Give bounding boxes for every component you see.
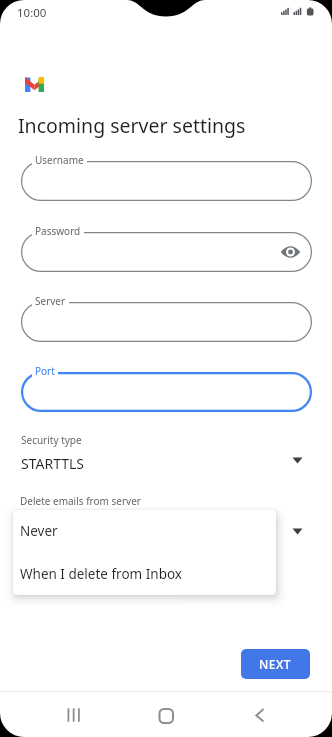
button[interactable]: Port [21, 372, 312, 412]
button[interactable]: NEXT [241, 649, 310, 679]
staticText: Port [35, 364, 55, 378]
button[interactable]: When I delete from Inbox [13, 553, 276, 595]
staticText: Security type [21, 433, 82, 447]
staticText: Delete emails from server [20, 494, 141, 508]
button[interactable]: Username [21, 161, 312, 201]
staticText: Never [20, 522, 58, 540]
staticText: Password [35, 224, 81, 238]
staticText: Incoming server settings [18, 112, 246, 139]
staticText: Server [35, 294, 66, 308]
staticText: STARTTLS [21, 454, 85, 473]
button[interactable]: Server [21, 302, 312, 342]
button[interactable]: Password [21, 232, 312, 272]
staticText: Username [35, 153, 84, 167]
button[interactable] [146, 700, 186, 734]
button[interactable]: Security type [13, 430, 319, 476]
button[interactable]: Never [13, 510, 276, 552]
staticText: When I delete from Inbox [20, 565, 182, 583]
button[interactable] [240, 700, 280, 734]
button[interactable] [55, 700, 95, 734]
staticText: NEXT [259, 656, 292, 672]
staticText: 10:00 [17, 5, 47, 21]
